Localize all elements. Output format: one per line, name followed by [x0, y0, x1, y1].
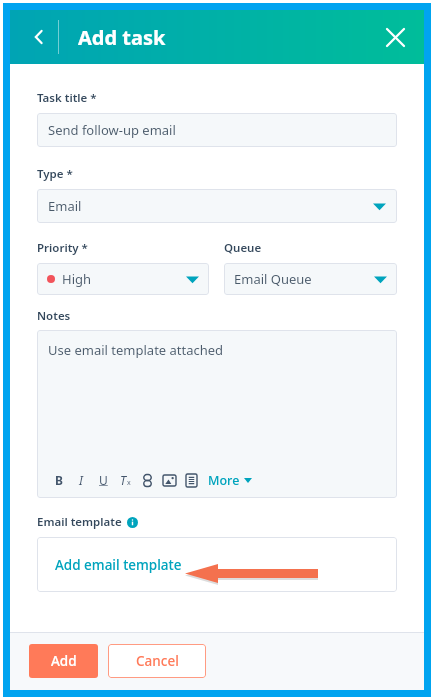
staticText: Notes [37, 308, 71, 324]
button[interactable]: Email Queue [224, 263, 397, 295]
staticText: Task title * [37, 90, 97, 106]
staticText: Use email template attached [48, 341, 224, 359]
staticText: Email Queue [234, 270, 312, 288]
button[interactable]: Bold [48, 469, 70, 491]
staticText: High [62, 270, 92, 288]
button[interactable]: More [208, 472, 252, 489]
button[interactable]: Insert document [180, 469, 202, 491]
button[interactable]: Close [376, 18, 414, 56]
button[interactable]: Add [29, 644, 98, 678]
button[interactable]: Email [37, 189, 397, 223]
button[interactable]: Insert image [158, 469, 180, 491]
button[interactable]: Insert link [136, 469, 158, 491]
staticText: Type * [37, 166, 73, 182]
staticText: Email [48, 197, 82, 215]
button[interactable]: Info [127, 517, 138, 528]
button[interactable]: Send follow-up email [37, 113, 397, 147]
staticText: I [79, 472, 83, 488]
button[interactable]: Back [20, 18, 58, 56]
staticText: B [55, 472, 63, 488]
staticText: Add [51, 652, 77, 670]
button[interactable]: Italic [70, 469, 92, 491]
button[interactable]: High [37, 263, 209, 295]
staticText: T [120, 472, 127, 488]
staticText: Priority * [37, 240, 88, 256]
staticText: x [127, 478, 131, 488]
staticText: Add task [78, 24, 166, 51]
staticText: Email template [37, 514, 122, 530]
button[interactable]: Underline [92, 469, 114, 491]
staticText: Cancel [136, 652, 179, 670]
staticText: U [99, 472, 108, 488]
button[interactable]: Use email template attached [37, 330, 397, 462]
staticText: Queue [224, 240, 262, 256]
button[interactable]: Cancel [108, 644, 206, 678]
staticText: Add email template [55, 556, 182, 574]
staticText: Send follow-up email [48, 121, 176, 139]
staticText: More [208, 472, 240, 489]
button[interactable]: Clear formatting [114, 469, 136, 491]
button[interactable]: Add email template [55, 556, 182, 574]
